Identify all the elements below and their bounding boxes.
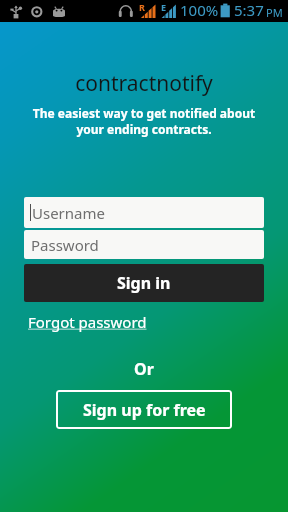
button[interactable]: Username — [24, 197, 264, 228]
staticText: Sign up for free — [83, 399, 206, 421]
staticText: Password — [31, 235, 99, 255]
button[interactable]: Sign up for free — [56, 390, 232, 429]
button[interactable]: Password — [24, 230, 264, 259]
staticText: 100% — [180, 0, 219, 20]
staticText: PM — [266, 5, 283, 20]
staticText: contractnotify — [0, 69, 288, 98]
staticText: E — [161, 1, 167, 13]
staticText: Username — [32, 203, 105, 223]
staticText: 5:37 — [234, 0, 264, 20]
staticText: The easiest way to get notified about yo… — [24, 105, 264, 138]
staticText: Sign in — [117, 272, 171, 294]
staticText: R — [139, 1, 145, 13]
button[interactable]: Forgot password — [23, 312, 147, 332]
staticText: Or — [0, 358, 288, 380]
staticText: Forgot password — [28, 312, 147, 332]
button[interactable]: Sign in — [24, 264, 264, 302]
